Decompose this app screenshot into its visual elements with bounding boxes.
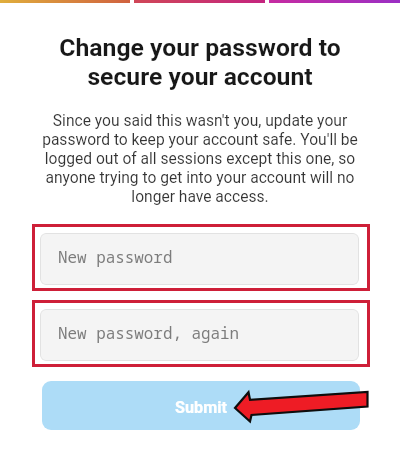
- staticText: New password: [58, 246, 173, 268]
- staticText: New password, again: [58, 322, 240, 344]
- staticText: Change your password to secure your acco…: [38, 33, 362, 91]
- staticText: Submit: [175, 398, 227, 417]
- button[interactable]: New password, again: [40, 309, 359, 361]
- button[interactable]: New password: [40, 233, 359, 285]
- staticText: Since you said this wasn't you, update y…: [26, 112, 374, 206]
- button[interactable]: Submit: [42, 381, 360, 430]
